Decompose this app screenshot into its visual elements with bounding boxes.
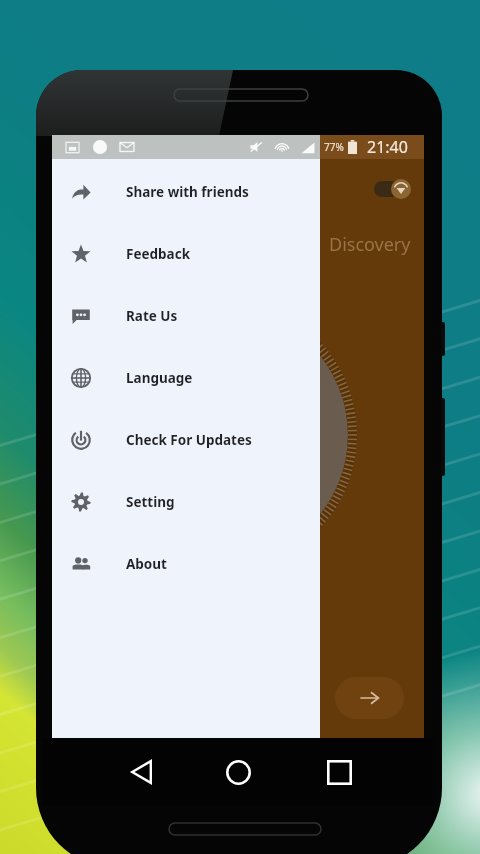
button[interactable]: Check For Updates (52, 409, 320, 471)
button[interactable]: Language (52, 347, 320, 409)
button[interactable]: Rate Us (52, 285, 320, 347)
button[interactable]: About (52, 533, 320, 595)
button[interactable]: Setting (52, 471, 320, 533)
staticText: 21:40 (367, 136, 408, 158)
staticText: Rate Us (126, 307, 178, 325)
staticText: 77% (324, 140, 344, 154)
button[interactable]: Next (335, 677, 404, 719)
staticText: Setting (126, 493, 175, 511)
staticText: Language (126, 369, 193, 387)
staticText: Share with friends (126, 183, 249, 201)
button[interactable]: Back (111, 741, 172, 803)
staticText: Feedback (126, 245, 191, 263)
button[interactable]: Wi-Fi toggle (370, 171, 416, 207)
button[interactable]: Feedback (52, 223, 320, 285)
staticText: About (126, 555, 167, 573)
staticText: Check For Updates (126, 431, 252, 449)
button[interactable]: Share with friends (52, 161, 320, 223)
button[interactable]: Home (207, 741, 269, 803)
button[interactable]: Recent apps (308, 741, 370, 803)
staticText: Discovery (329, 232, 411, 257)
